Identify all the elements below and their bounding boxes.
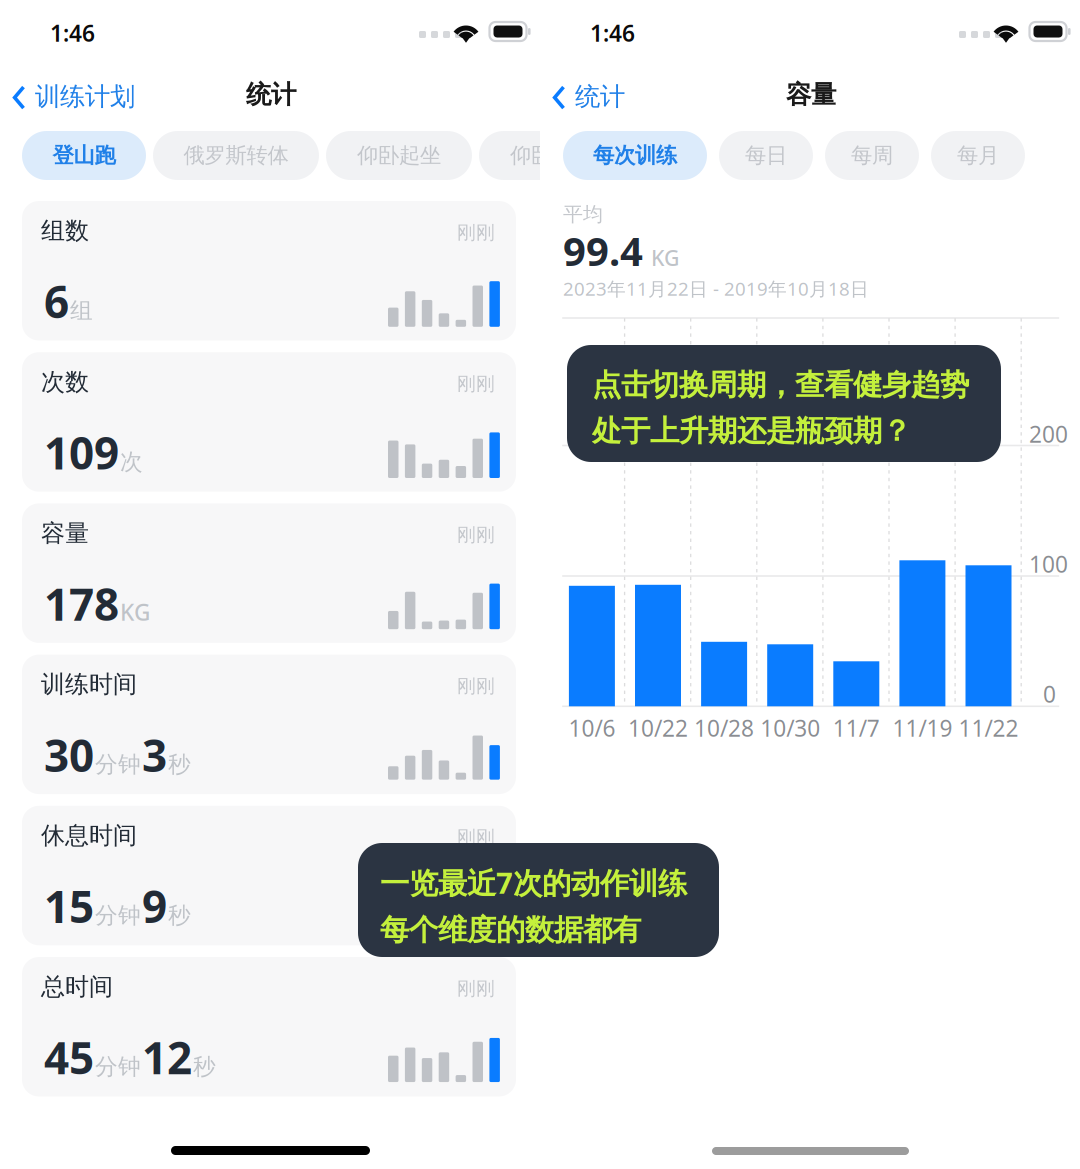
staticText: 统计 (246, 79, 296, 110)
staticText: 9 (142, 877, 167, 935)
staticText: 统计 (575, 81, 625, 112)
button[interactable]: 统计 (552, 82, 625, 113)
staticText: 训练计划 (35, 81, 135, 112)
button[interactable]: 休息时间 (22, 806, 516, 945)
staticText: 休息时间 (41, 821, 137, 850)
staticText: 次数 (41, 367, 89, 397)
staticText: 刚刚 (457, 977, 495, 1000)
button[interactable]: 每日 (719, 131, 813, 180)
staticText: 10/22 (628, 713, 688, 743)
staticText: 点击切换周期，查看健身趋势 (592, 367, 969, 403)
staticText: KG (120, 597, 150, 627)
staticText: 处于上升期还是瓶颈期？ (592, 413, 911, 449)
staticText: 15 (44, 877, 94, 935)
staticText: 刚刚 (457, 675, 495, 697)
staticText: 训练时间 (41, 670, 137, 699)
staticText: 99.4 (563, 224, 643, 277)
staticText: 一览最近7次的动作训练 (380, 863, 687, 902)
button[interactable]: 仰卧起坐 (326, 131, 472, 180)
staticText: 2023年11月22日 - 2019年10月18日 (563, 276, 869, 301)
button[interactable]: 容量 (22, 503, 516, 643)
staticText: 11/22 (958, 713, 1018, 743)
staticText: 每个维度的数据都有 (380, 912, 641, 948)
staticText: 0 (1043, 679, 1056, 709)
button[interactable]: 总时间 (22, 957, 516, 1096)
staticText: 100 (1029, 549, 1068, 579)
staticText: 平均 (563, 202, 603, 227)
staticText: 3 (142, 726, 167, 784)
staticText: 45 (44, 1028, 94, 1086)
staticText: KG (651, 244, 680, 272)
staticText: 俄罗斯转体 (183, 142, 288, 169)
button[interactable]: 每月 (931, 131, 1025, 180)
staticText: 1:46 (590, 18, 635, 48)
button[interactable]: 登山跑 (22, 131, 146, 180)
button[interactable]: 组数 (22, 201, 516, 340)
button[interactable]: 训练时间 (22, 655, 516, 794)
staticText: 每月 (957, 142, 999, 169)
staticText: 6 (44, 272, 69, 330)
staticText: 容量 (41, 518, 89, 548)
staticText: 次 (120, 448, 143, 476)
staticText: 200 (1029, 419, 1068, 449)
staticText: 12 (142, 1028, 192, 1086)
staticText: 10/28 (694, 713, 754, 743)
staticText: 分钟 (95, 750, 141, 778)
staticText: 刚刚 (457, 221, 495, 244)
staticText: 仰卧起坐 (357, 142, 441, 169)
staticText: 1:46 (50, 18, 95, 48)
staticText: 每日 (745, 142, 787, 169)
staticText: 总时间 (41, 972, 113, 1001)
button[interactable]: 次数 (22, 352, 516, 492)
button[interactable]: 仰卧起坐 (479, 131, 625, 180)
staticText: 每次训练 (593, 142, 677, 169)
staticText: 11/19 (892, 713, 952, 743)
staticText: 刚刚 (457, 523, 495, 546)
staticText: 178 (44, 574, 119, 633)
staticText: 分钟 (95, 902, 141, 929)
button[interactable]: 俄罗斯转体 (153, 131, 319, 180)
staticText: 容量 (786, 79, 836, 110)
staticText: 仰卧起坐 (510, 142, 594, 169)
staticText: 11/7 (833, 713, 880, 743)
staticText: 刚刚 (457, 826, 495, 849)
staticText: 秒 (168, 902, 191, 929)
staticText: 秒 (193, 1053, 216, 1081)
staticText: 登山跑 (52, 142, 115, 169)
staticText: 刚刚 (457, 372, 495, 395)
staticText: 组 (70, 297, 93, 325)
staticText: 组数 (41, 216, 89, 245)
staticText: 109 (44, 423, 119, 482)
staticText: 分钟 (95, 1053, 141, 1081)
button[interactable]: 每次训练 (563, 131, 707, 180)
button[interactable]: 每周 (825, 131, 919, 180)
staticText: 每周 (851, 142, 893, 169)
staticText: 秒 (168, 750, 191, 778)
staticText: 10/30 (760, 713, 820, 743)
staticText: 10/6 (568, 713, 615, 743)
button[interactable]: 训练计划 (12, 82, 135, 113)
staticText: 30 (44, 726, 94, 784)
